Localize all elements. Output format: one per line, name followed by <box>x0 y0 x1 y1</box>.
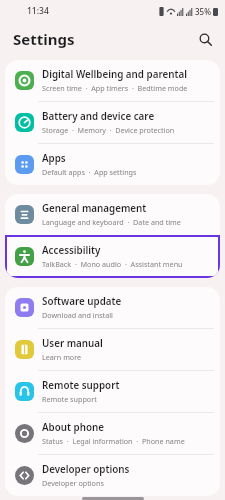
staticText: Accessibility <box>42 244 101 257</box>
staticText: TalkBack · Mono audio · Assistant menu <box>42 259 183 269</box>
staticText: About phone <box>42 421 104 434</box>
staticText: 35% <box>195 6 211 17</box>
staticText: Digital Wellbeing and parental controls <box>42 68 214 81</box>
button[interactable]: Search <box>193 27 217 51</box>
staticText: Developer options <box>42 478 104 488</box>
staticText: Language and keyboard · Date and time <box>42 217 181 227</box>
staticText: General management <box>42 202 147 215</box>
button[interactable]: General management <box>5 194 220 235</box>
staticText: Default apps · App settings <box>42 167 137 177</box>
staticText: Remote support <box>42 394 97 404</box>
button[interactable]: About phone <box>5 413 220 454</box>
staticText: Battery and device care <box>42 110 155 123</box>
button[interactable]: Digital Wellbeing and parental controls <box>5 60 220 101</box>
button[interactable]: Developer options <box>5 455 220 496</box>
button[interactable]: Apps <box>5 144 220 185</box>
button[interactable]: Software update <box>5 287 220 328</box>
staticText: Status · Legal information · Phone name <box>42 436 185 446</box>
staticText: Screen time · App timers · Bedtime mode <box>42 83 188 93</box>
staticText: Apps <box>42 152 66 165</box>
staticText: Software update <box>42 295 122 308</box>
staticText: Settings <box>13 29 75 49</box>
staticText: User manual <box>42 337 103 350</box>
button[interactable]: Battery and device care <box>5 102 220 143</box>
staticText: Storage · Memory · Device protection <box>42 125 175 135</box>
staticText: Remote support <box>42 379 120 392</box>
button[interactable]: Remote support <box>5 371 220 412</box>
staticText: Download and install <box>42 310 113 320</box>
button[interactable]: Accessibility <box>7 237 218 276</box>
staticText: Learn more <box>42 352 82 362</box>
button[interactable]: User manual <box>5 329 220 370</box>
staticText: 11:34 <box>27 5 49 17</box>
staticText: Developer options <box>42 463 130 476</box>
